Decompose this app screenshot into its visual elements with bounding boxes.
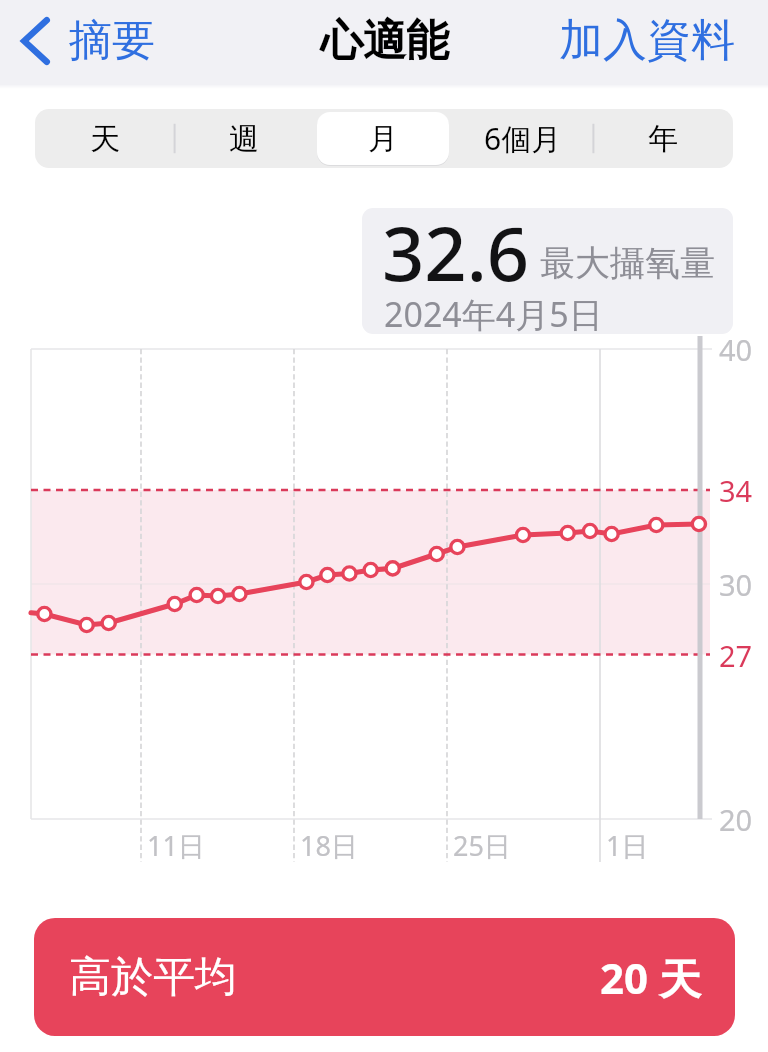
button[interactable]: Back to 摘要 (0, 4, 169, 78)
staticText: 1日 (606, 827, 649, 864)
staticText: 11日 (147, 827, 205, 864)
staticText: 天 (90, 120, 120, 158)
button[interactable]: 年 (593, 109, 733, 168)
staticText: 月 (368, 120, 398, 158)
staticText: 最大攝氧量 (540, 241, 715, 285)
staticText: 摘要 (69, 14, 155, 68)
staticText: 40 (719, 330, 753, 369)
staticText: 20 天 (600, 949, 701, 1006)
staticText: 2024年4月5日 (384, 291, 603, 334)
staticText: 心適能 (320, 14, 449, 68)
staticText: 25日 (453, 827, 511, 864)
staticText: 18日 (300, 827, 358, 864)
button[interactable]: 天 (35, 109, 174, 168)
staticText: 週 (229, 120, 259, 158)
button[interactable]: 高於平均 (34, 918, 735, 1036)
staticText: 年 (648, 120, 678, 158)
staticText: 30 (719, 565, 753, 604)
button[interactable]: 週 (174, 109, 313, 168)
staticText: 6個月 (484, 118, 562, 159)
staticText: 34 (719, 471, 753, 510)
button[interactable]: 月 (313, 109, 453, 168)
button[interactable]: 6個月 (453, 109, 593, 168)
staticText: 20 (719, 800, 753, 839)
button[interactable]: 加入資料 (541, 3, 768, 78)
staticText: 32.6 (382, 208, 530, 303)
staticText: 27 (719, 636, 753, 675)
staticText: 高於平均 (69, 951, 237, 1004)
staticText: 加入資料 (559, 13, 735, 68)
